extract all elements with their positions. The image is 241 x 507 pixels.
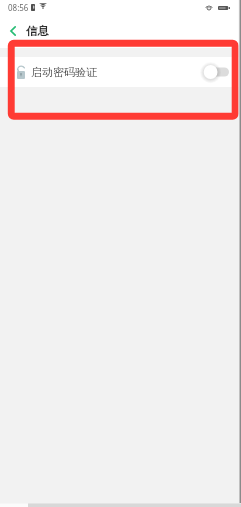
other: Back <box>10 26 16 36</box>
staticText: 08:56 <box>8 2 29 13</box>
staticText: 信息 <box>26 24 49 38</box>
button[interactable]: Back <box>0 14 59 48</box>
button[interactable]: 启动密码验证 <box>0 57 241 87</box>
staticText: 启动密码验证 <box>31 65 97 79</box>
button[interactable]: Toggle password verification <box>203 57 229 87</box>
